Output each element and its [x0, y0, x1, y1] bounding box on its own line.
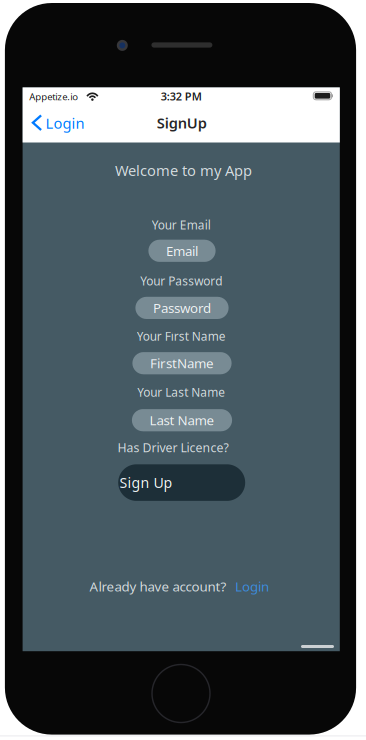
staticText: FirstName: [150, 354, 214, 372]
button[interactable]: Email: [148, 240, 216, 262]
staticText: Has Driver Licence?: [117, 439, 228, 456]
staticText: SignUp: [157, 113, 207, 133]
button[interactable]: Sign Up: [118, 464, 245, 501]
staticText: Last Name: [149, 411, 214, 429]
staticText: Email: [166, 242, 198, 260]
button[interactable]: Login: [235, 577, 269, 595]
staticText: Login: [235, 577, 269, 595]
staticText: Login: [45, 113, 84, 133]
staticText: Your Password: [140, 273, 222, 289]
button[interactable]: Password: [135, 297, 229, 319]
staticText: Welcome to my App: [115, 160, 252, 180]
button[interactable]: FirstName: [132, 352, 232, 374]
staticText: Password: [153, 299, 211, 317]
button[interactable]: Last Name: [132, 409, 232, 431]
staticText: Your Email: [152, 217, 211, 233]
button[interactable]: Login: [28, 111, 86, 135]
staticText: Already have account?: [89, 577, 226, 595]
staticText: Sign Up: [119, 473, 172, 492]
staticText: Your First Name: [137, 328, 226, 344]
staticText: Your Last Name: [137, 384, 225, 400]
staticText: Appetize.io: [29, 90, 78, 103]
staticText: 3:32 PM: [161, 89, 202, 104]
